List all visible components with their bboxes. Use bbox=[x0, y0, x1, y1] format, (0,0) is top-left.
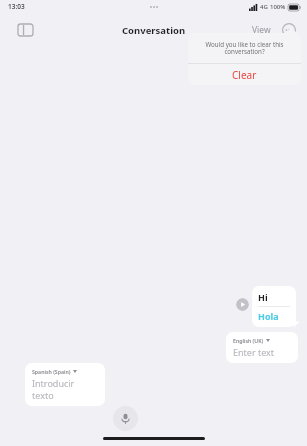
button[interactable]: Clear bbox=[188, 64, 301, 85]
button[interactable]: Play translation bbox=[236, 298, 249, 311]
staticText: Spanish (Spain) bbox=[32, 368, 71, 375]
staticText: 13:03 bbox=[8, 2, 25, 11]
staticText: Would you like to clear this conversatio… bbox=[194, 40, 295, 56]
button[interactable]: View bbox=[249, 21, 274, 39]
staticText: View bbox=[252, 24, 271, 36]
staticText: Clear bbox=[232, 68, 257, 82]
button[interactable]: More options bbox=[281, 22, 297, 38]
button[interactable]: Show sidebar bbox=[14, 19, 36, 41]
staticText: English (UK) bbox=[233, 337, 264, 344]
staticText: 100% bbox=[270, 3, 286, 11]
staticText: Introducir texto bbox=[32, 377, 98, 401]
staticText: 4G bbox=[260, 3, 268, 11]
button[interactable]: English (UK) bbox=[226, 332, 298, 363]
staticText: Enter text bbox=[233, 346, 275, 358]
staticText: Hola bbox=[258, 310, 279, 322]
button[interactable]: Microphone bbox=[113, 406, 138, 431]
staticText: Conversation bbox=[122, 24, 186, 37]
button[interactable]: Hi bbox=[252, 286, 296, 327]
button[interactable]: Spanish (Spain) bbox=[25, 363, 105, 406]
staticText: Hi bbox=[258, 291, 268, 303]
